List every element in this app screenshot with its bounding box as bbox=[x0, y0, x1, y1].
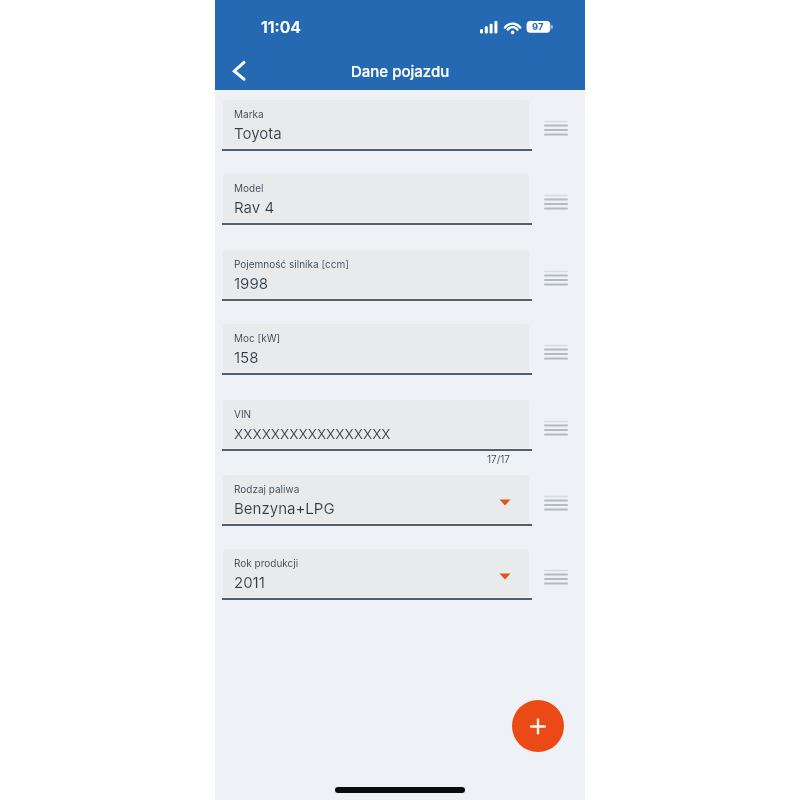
staticText: XXXXXXXXXXXXXXXXX bbox=[234, 426, 391, 442]
button[interactable]: Pojemność silnika [ccm] bbox=[223, 250, 529, 298]
staticText: Rav 4 bbox=[234, 198, 275, 216]
staticText: Marka bbox=[234, 108, 264, 120]
staticText: Benzyna+LPG bbox=[234, 499, 335, 517]
staticText: Moc [kW] bbox=[234, 332, 281, 344]
staticText: Model bbox=[234, 182, 264, 194]
staticText: Toyota bbox=[234, 124, 282, 142]
staticText: 97 bbox=[532, 21, 544, 32]
button[interactable] bbox=[512, 700, 564, 752]
staticText: 158 bbox=[234, 348, 259, 366]
staticText: 1998 bbox=[234, 274, 268, 292]
button[interactable]: Rodzaj paliwa bbox=[223, 475, 529, 523]
staticText: 2011 bbox=[234, 573, 265, 591]
staticText: Rok produkcji bbox=[234, 557, 299, 569]
button[interactable]: VIN bbox=[223, 400, 529, 448]
staticText: VIN bbox=[234, 408, 252, 420]
staticText: Dane pojazdu bbox=[351, 62, 450, 80]
button[interactable] bbox=[223, 56, 255, 86]
button[interactable]: Marka bbox=[223, 100, 529, 148]
button[interactable]: Rok produkcji bbox=[223, 549, 529, 597]
staticText: Rodzaj paliwa bbox=[234, 483, 300, 495]
staticText: Pojemność silnika [ccm] bbox=[234, 258, 349, 270]
button[interactable]: Model bbox=[223, 174, 529, 222]
staticText: 11:04 bbox=[261, 17, 301, 36]
button[interactable]: Moc [kW] bbox=[223, 324, 529, 372]
staticText: 17/17 bbox=[486, 453, 510, 465]
